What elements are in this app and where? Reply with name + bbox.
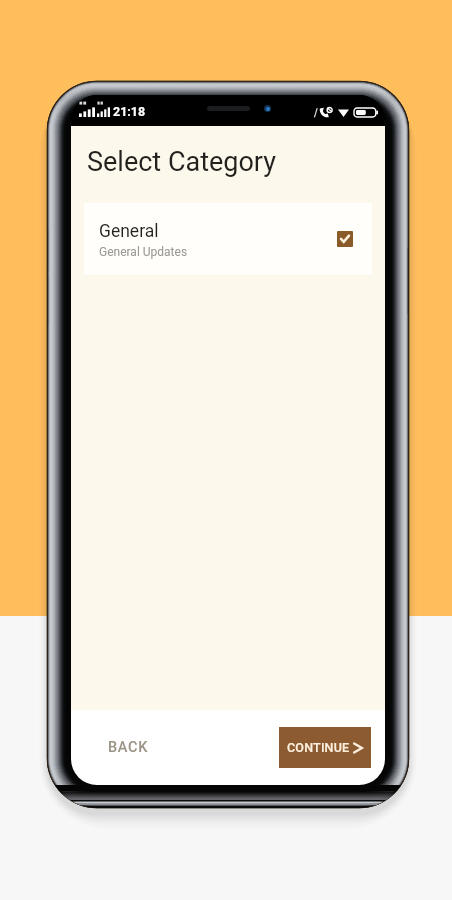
staticText: CONTINUE (287, 740, 350, 755)
staticText: General Updates (99, 245, 188, 259)
staticText: BACK (108, 739, 149, 756)
staticText: General (99, 221, 159, 242)
staticText: Select Category (87, 146, 277, 178)
staticText: 21:18 (113, 104, 146, 119)
other: Selected (337, 231, 353, 247)
button[interactable]: General (84, 203, 372, 275)
button[interactable]: BACK (96, 730, 161, 765)
button[interactable]: CONTINUE (279, 727, 371, 768)
